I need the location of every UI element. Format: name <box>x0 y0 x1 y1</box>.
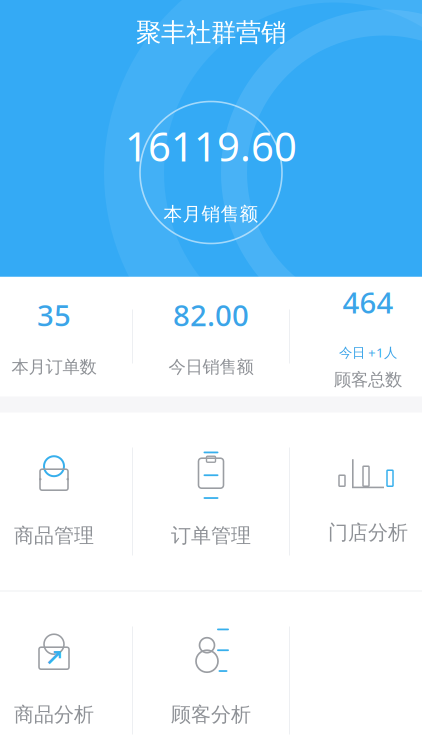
staticText: 今日 +1人 <box>339 343 397 361</box>
staticText: 顾客分析 <box>171 702 251 727</box>
staticText: 本月订单数 <box>11 356 96 378</box>
button[interactable]: 35 <box>0 286 124 386</box>
staticText: 35 <box>37 295 71 334</box>
button[interactable]: 82.00 <box>141 286 281 386</box>
staticText: 今日销售额 <box>168 356 253 378</box>
staticText: 顾客总数 <box>334 369 402 390</box>
staticText: 订单管理 <box>171 523 251 548</box>
staticText: 商品管理 <box>14 523 94 548</box>
staticText: 门店分析 <box>328 520 408 545</box>
staticText: 本月销售额 <box>163 203 258 225</box>
staticText: 82.00 <box>173 295 249 334</box>
button[interactable]: 门店分析 <box>298 420 422 582</box>
staticText: 商品分析 <box>14 702 94 727</box>
staticText: 464 <box>342 282 393 321</box>
staticText: 聚丰社群营销 <box>136 17 286 48</box>
staticText: ↗ <box>44 645 63 671</box>
button[interactable]: 订单管理 <box>141 420 281 582</box>
staticText: 16119.60 <box>125 119 297 173</box>
button[interactable]: 464 <box>298 286 422 386</box>
button[interactable]: ↗ <box>0 599 124 750</box>
button[interactable]: 顾客分析 <box>141 599 281 750</box>
button[interactable]: 商品管理 <box>0 420 124 582</box>
